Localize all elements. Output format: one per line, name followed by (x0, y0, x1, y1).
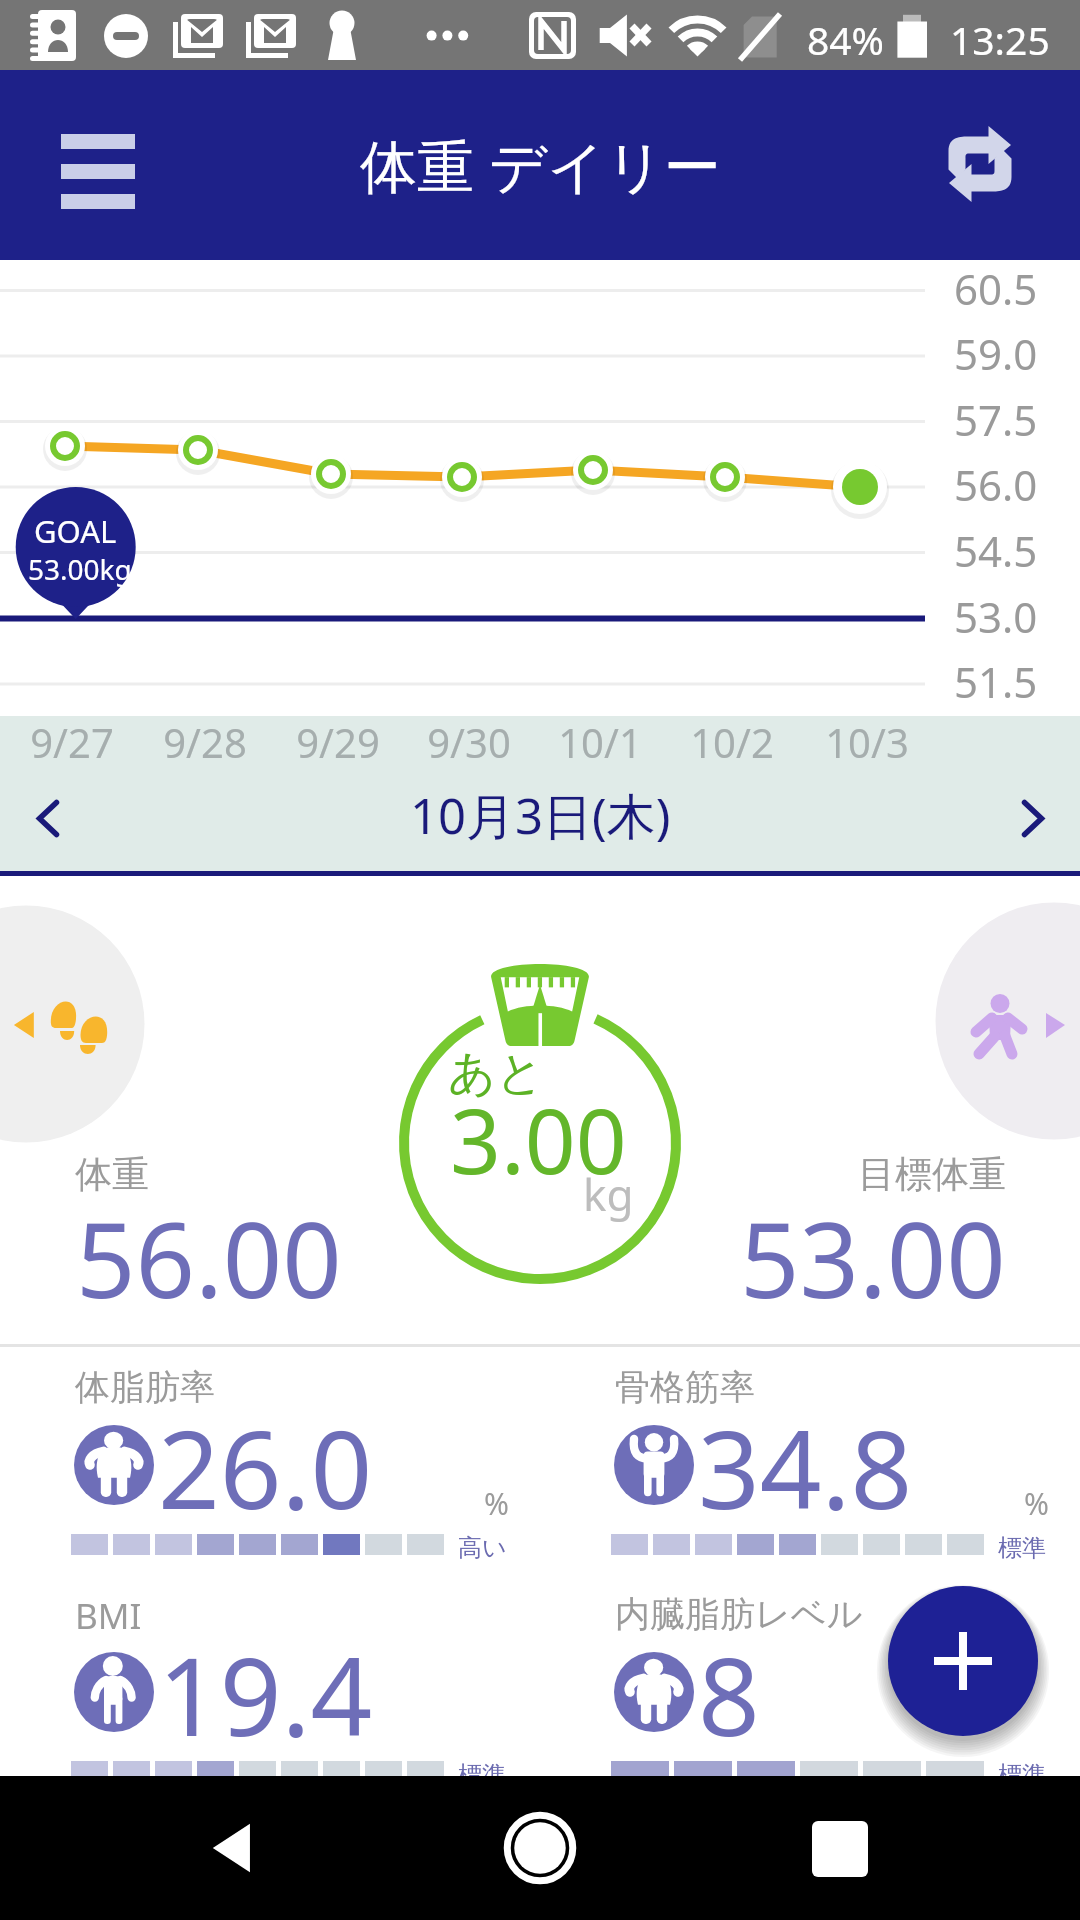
staticText: 13:25 (950, 13, 1050, 66)
staticText: 体重 デイリー (360, 126, 721, 204)
staticText: % (1024, 1483, 1049, 1524)
staticText: 体脂肪率 (75, 1365, 215, 1409)
staticText: kg (583, 1164, 634, 1224)
staticText: 53.00 (740, 1187, 1006, 1329)
staticText: 19.4 (158, 1621, 373, 1768)
staticText: 9/27 (30, 715, 114, 769)
staticText: 標準 (998, 1533, 1046, 1563)
staticText: 内臓脂肪レベル (615, 1592, 863, 1636)
staticText: 53.0 (954, 588, 1038, 645)
button[interactable]: Menu (40, 110, 150, 220)
staticText: 高い (458, 1533, 507, 1563)
staticText: 53.00kg (28, 550, 132, 588)
staticText: あと (448, 1044, 545, 1103)
staticText: 標準 (458, 1760, 506, 1790)
staticText: 84% (807, 13, 885, 66)
staticText: 60.5 (954, 260, 1038, 317)
staticText: 骨格筋率 (615, 1365, 755, 1409)
staticText: 3.00 (450, 1079, 627, 1200)
staticText: 8 (698, 1621, 760, 1768)
staticText: 9/29 (296, 715, 380, 769)
staticText: 10/1 (558, 715, 642, 769)
staticText: 34.8 (698, 1394, 913, 1541)
staticText: 体重 (75, 1151, 149, 1198)
button[interactable]: Add record (888, 1586, 1038, 1736)
staticText: 26.0 (158, 1394, 373, 1541)
staticText: 54.5 (954, 522, 1038, 579)
staticText: 59.0 (954, 325, 1038, 382)
staticText: GOAL (34, 510, 117, 552)
button[interactable]: 体脂肪率 (0, 1339, 540, 1566)
button[interactable]: Home (501, 1809, 579, 1887)
button[interactable]: 骨格筋率 (540, 1339, 1080, 1566)
button[interactable]: Back (200, 1816, 264, 1880)
staticText: 目標体重 (858, 1151, 1006, 1198)
staticText: BMI (75, 1592, 142, 1640)
staticText: 10月3日(木) (410, 782, 671, 849)
button[interactable]: 内臓脂肪レベル (540, 1566, 1080, 1793)
staticText: 10/2 (690, 715, 774, 769)
staticText: % (484, 1483, 509, 1524)
staticText: 56.0 (954, 456, 1038, 513)
staticText: 9/28 (163, 715, 247, 769)
button[interactable]: Recents (812, 1821, 868, 1877)
staticText: 57.5 (954, 391, 1038, 448)
staticText: 10/3 (825, 715, 909, 769)
button[interactable]: Previous day (0, 781, 95, 871)
staticText: 9/30 (427, 715, 511, 769)
staticText: 標準 (998, 1760, 1046, 1790)
button[interactable]: Refresh (928, 106, 1033, 222)
button[interactable]: BMI (0, 1566, 540, 1793)
button[interactable]: Next day (985, 781, 1080, 871)
staticText: 51.5 (954, 653, 1038, 710)
staticText: 56.00 (76, 1187, 342, 1329)
